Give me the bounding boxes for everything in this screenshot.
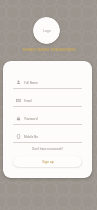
staticText: Full Name: [24, 81, 38, 85]
staticText: Email: [24, 99, 32, 103]
button[interactable]: Sign up: [13, 156, 82, 167]
button[interactable]: Logo: [33, 17, 60, 44]
staticText: Password: [24, 117, 38, 121]
staticText: Sign up: [42, 160, 54, 164]
button[interactable]: Password: [13, 116, 82, 125]
staticText: SHREE NATH DIAMONDS: [22, 47, 76, 53]
staticText: Logo: [43, 29, 51, 33]
button[interactable]: Email: [13, 98, 82, 107]
staticText: Mobile No: [24, 135, 38, 139]
button[interactable]: Full Name: [13, 80, 82, 89]
button[interactable]: Mobile No: [13, 134, 82, 143]
staticText: Don't have an account?: [32, 147, 63, 151]
